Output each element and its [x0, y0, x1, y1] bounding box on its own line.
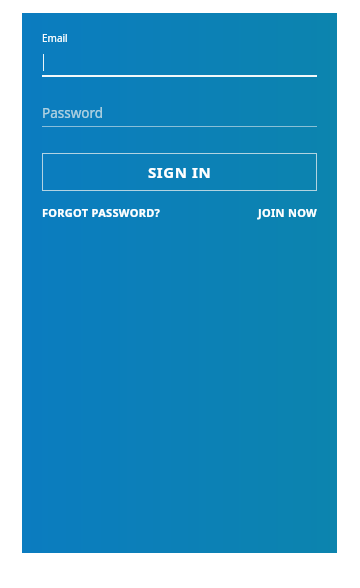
button[interactable]: SIGN IN: [42, 153, 317, 191]
button[interactable]: FORGOT PASSWORD?: [42, 202, 161, 223]
staticText: JOIN NOW: [258, 205, 317, 220]
button[interactable]: JOIN NOW: [258, 202, 317, 223]
staticText: Password: [42, 104, 104, 122]
button[interactable]: Email: [42, 31, 317, 77]
button[interactable]: Password: [42, 103, 317, 127]
staticText: FORGOT PASSWORD?: [42, 205, 161, 220]
staticText: SIGN IN: [148, 162, 212, 182]
staticText: Email: [42, 31, 68, 45]
